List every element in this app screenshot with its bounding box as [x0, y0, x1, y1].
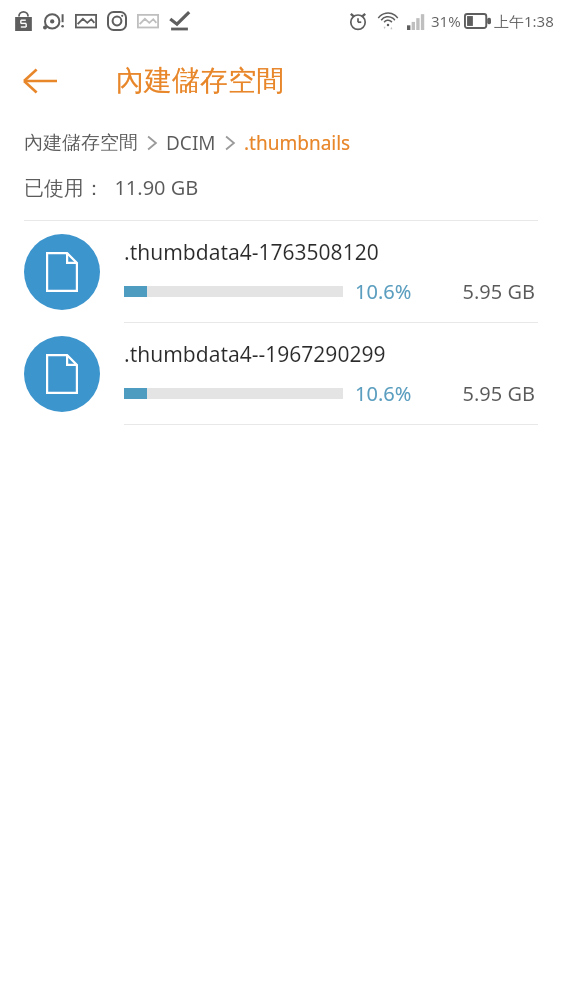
staticText: .thumbnails: [244, 130, 351, 156]
staticText: 31%: [431, 11, 461, 31]
staticText: .thumbdata4-1763508120: [124, 238, 379, 267]
button[interactable]: 返回: [8, 49, 72, 113]
staticText: DCIM: [166, 130, 216, 156]
staticText: 已使用： 11.90 GB: [24, 174, 199, 201]
staticText: .thumbdata4--1967290299: [124, 340, 386, 369]
button[interactable]: 內建儲存空間: [24, 131, 138, 155]
staticText: 5.95 GB: [413, 278, 535, 305]
staticText: 內建儲存空間: [24, 131, 138, 155]
button[interactable]: .thumbnails: [244, 130, 351, 156]
staticText: 內建儲存空間: [116, 63, 284, 98]
staticText: 5.95 GB: [413, 380, 535, 407]
staticText: 10.6%: [355, 380, 412, 407]
staticText: 上午1:38: [494, 11, 554, 31]
staticText: 10.6%: [355, 278, 412, 305]
button[interactable]: DCIM: [166, 130, 216, 156]
button[interactable]: .thumbdata4-1763508120: [0, 221, 562, 322]
button[interactable]: .thumbdata4--1967290299: [0, 323, 562, 424]
